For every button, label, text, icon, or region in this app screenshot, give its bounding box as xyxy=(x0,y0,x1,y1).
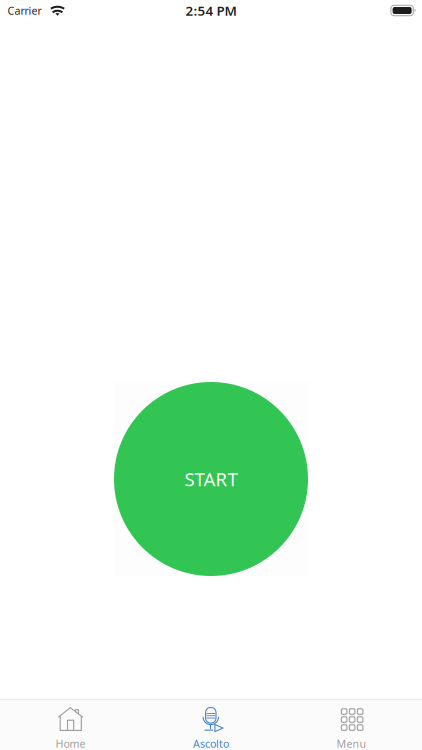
staticText: START xyxy=(184,467,237,491)
staticText: 2:54 PM xyxy=(185,2,236,19)
staticText: Menu xyxy=(337,736,367,750)
button[interactable]: Ascolto xyxy=(141,699,281,750)
staticText: Ascolto xyxy=(193,736,229,750)
staticText: Home xyxy=(55,736,85,750)
staticText: Carrier xyxy=(7,3,41,18)
button[interactable]: Home xyxy=(0,699,141,750)
button[interactable]: START xyxy=(114,382,308,576)
button[interactable]: Menu xyxy=(281,699,422,750)
